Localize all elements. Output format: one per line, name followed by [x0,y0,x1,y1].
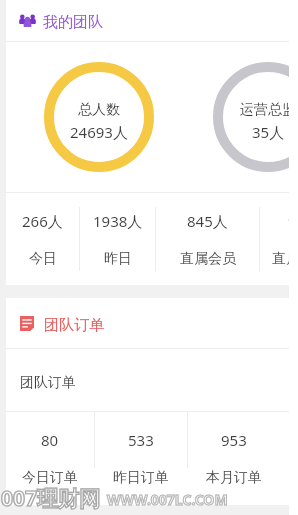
button[interactable]: 845人 [156,193,259,285]
staticText: 007理财网 [1,484,101,513]
staticText: WWW.007LC.COM [107,490,228,509]
staticText: 533 [128,430,154,450]
staticText: 今日 [29,250,57,268]
staticText: 昨日订单 [113,469,169,487]
button[interactable]: 团队订单 [6,349,289,411]
staticText: 953 [221,430,247,450]
button[interactable]: 运营总监 [213,62,289,172]
staticText: 总人数 [78,101,120,119]
staticText: 我的团队 [43,13,103,32]
staticText: 运营总监 [240,101,289,119]
staticText: 9人 [288,211,289,231]
staticText: 35人 [252,122,285,142]
staticText: WWW.007LC.COM [107,490,228,509]
button[interactable]: 533 [95,412,187,505]
button[interactable]: 团队订单 [6,298,289,348]
button[interactable]: 1938人 [80,193,155,285]
staticText: 845人 [187,211,228,231]
button[interactable]: 266人 [6,193,79,285]
staticText: 团队订单 [44,316,104,335]
staticText: 1938人 [93,211,143,231]
button[interactable]: 953 [188,412,280,505]
button[interactable]: 80 [6,412,94,505]
staticText: 今日订单 [22,469,78,487]
button[interactable]: 我的团队 [6,0,289,41]
staticText: 本月订单 [206,469,262,487]
staticText: 007理财网 [1,484,101,513]
button[interactable]: 9人 [260,193,289,285]
staticText: 团队订单 [20,374,76,392]
staticText: 266人 [22,211,63,231]
staticText: 昨日 [104,250,132,268]
staticText: 直属会员 [180,250,236,268]
staticText: 直属会员 [272,250,289,268]
staticText: 80 [41,430,59,450]
staticText: 24693人 [70,122,128,142]
button[interactable]: 总人数 [44,62,154,172]
